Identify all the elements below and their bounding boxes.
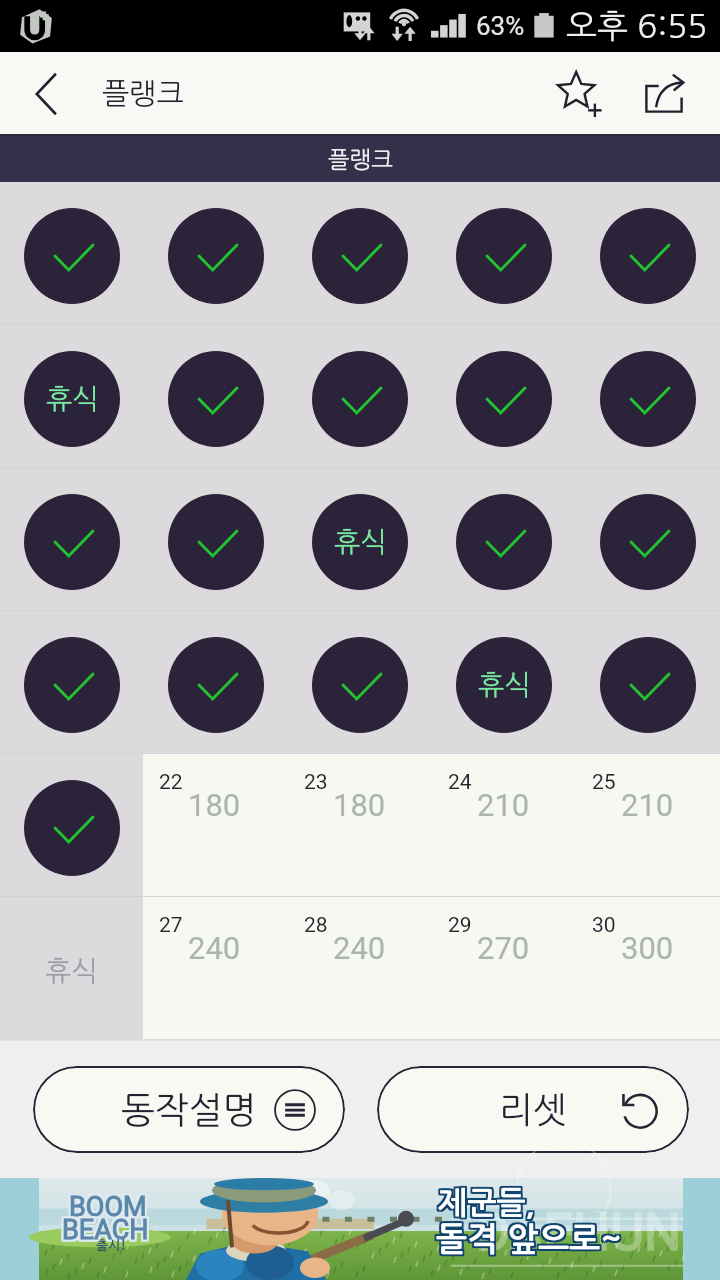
staticText: 제군들,: [440, 1188, 537, 1219]
button[interactable]: [0, 182, 144, 324]
staticText: 돌격 앞으로~: [436, 1221, 622, 1254]
staticText: BOOM: [69, 1193, 147, 1225]
staticText: 휴식: [478, 671, 531, 699]
staticText: BEACH: [60, 1212, 147, 1244]
button[interactable]: 24: [432, 754, 576, 896]
staticText: 플랭크: [328, 148, 393, 171]
button[interactable]: [144, 611, 288, 753]
staticText: BEACH: [60, 1216, 147, 1248]
staticText: 240: [333, 930, 386, 966]
staticText: BEACH: [62, 1216, 149, 1248]
button[interactable]: [0, 468, 144, 610]
button[interactable]: [0, 754, 143, 896]
staticText: 돌격 앞으로~: [434, 1221, 620, 1254]
staticText: 180: [188, 787, 241, 823]
staticText: 돌격 앞으로~: [438, 1225, 624, 1258]
staticText: 동작설명: [121, 1092, 257, 1128]
button[interactable]: 22: [143, 754, 288, 896]
staticText: 180: [333, 787, 386, 823]
staticText: 돌격 앞으로~: [436, 1223, 622, 1256]
staticText: BOOM: [71, 1193, 149, 1225]
staticText: 240: [188, 930, 241, 966]
staticText: 270: [477, 930, 530, 966]
staticText: 제군들,: [436, 1188, 533, 1219]
button[interactable]: [288, 182, 432, 324]
staticText: BOOM: [71, 1191, 149, 1223]
button[interactable]: 25: [576, 754, 720, 896]
button[interactable]: 29: [432, 897, 576, 1039]
staticText: 30: [592, 913, 616, 938]
staticText: BEACH: [62, 1212, 149, 1244]
button[interactable]: 28: [288, 897, 432, 1039]
staticText: BEACH: [64, 1214, 151, 1246]
button[interactable]: [144, 468, 288, 610]
staticText: 제군들,: [438, 1186, 535, 1217]
button[interactable]: 27: [143, 897, 288, 1039]
staticText: BEACH: [62, 1214, 149, 1246]
staticText: BOOM: [67, 1191, 145, 1223]
button[interactable]: 휴식: [0, 325, 144, 467]
staticText: 22: [159, 770, 183, 795]
staticText: BOOM: [67, 1193, 145, 1225]
button[interactable]: [432, 182, 576, 324]
staticText: 제군들,: [438, 1188, 535, 1219]
button[interactable]: [432, 325, 576, 467]
staticText: 27: [159, 913, 183, 938]
staticText: BEACH: [64, 1216, 151, 1248]
button[interactable]: [576, 611, 720, 753]
staticText: BOOM: [69, 1191, 147, 1223]
button[interactable]: [288, 325, 432, 467]
button[interactable]: 동작설명: [33, 1066, 345, 1153]
staticText: 휴식: [46, 385, 99, 413]
staticText: BEACH: [64, 1212, 151, 1244]
staticText: 돌격 앞으로~: [436, 1223, 622, 1256]
staticText: 24: [448, 770, 472, 795]
button[interactable]: Share: [622, 52, 706, 136]
button[interactable]: [0, 611, 144, 753]
staticText: 25: [592, 770, 616, 795]
staticText: 돌격 앞으로~: [434, 1225, 620, 1258]
button[interactable]: 23: [288, 754, 432, 896]
staticText: 300: [621, 930, 674, 966]
staticText: 돌격 앞으로~: [434, 1223, 620, 1256]
staticText: 돌격 앞으로~: [438, 1223, 624, 1256]
staticText: DAEHUN: [476, 1202, 681, 1263]
button[interactable]: 30: [576, 897, 720, 1039]
button[interactable]: [432, 468, 576, 610]
staticText: 제군들,: [440, 1186, 537, 1217]
staticText: 돌격 앞으로~: [438, 1221, 624, 1254]
staticText: BEACH: [62, 1214, 149, 1246]
staticText: BOOM: [67, 1189, 145, 1221]
button[interactable]: [576, 468, 720, 610]
button[interactable]: 리셋: [377, 1066, 689, 1153]
staticText: 리셋: [499, 1092, 567, 1128]
staticText: 출시!: [96, 1239, 126, 1252]
staticText: 210: [621, 787, 674, 823]
button[interactable]: [288, 611, 432, 753]
staticText: 23: [304, 770, 328, 795]
staticText: 63%: [476, 11, 525, 41]
staticText: BOOM: [69, 1189, 147, 1221]
staticText: 휴식: [45, 957, 98, 985]
button[interactable]: Add to favourites: [538, 52, 622, 136]
staticText: 제군들,: [438, 1190, 535, 1221]
staticText: 돌격 앞으로~: [436, 1225, 622, 1258]
button[interactable]: Back: [0, 52, 96, 136]
staticText: 오후 6:55: [566, 10, 708, 43]
button[interactable]: [144, 182, 288, 324]
button[interactable]: DAEHUN: [0, 1178, 720, 1280]
staticText: 제군들,: [436, 1190, 533, 1221]
button[interactable]: 휴식: [288, 468, 432, 610]
staticText: BOOM: [71, 1189, 149, 1221]
staticText: 휴식: [334, 528, 387, 556]
staticText: 210: [477, 787, 530, 823]
button[interactable]: [144, 325, 288, 467]
button[interactable]: 휴식: [432, 611, 576, 753]
staticText: 29: [448, 913, 472, 938]
button[interactable]: [576, 325, 720, 467]
staticText: 제군들,: [440, 1190, 537, 1221]
button[interactable]: [576, 182, 720, 324]
button[interactable]: 휴식: [0, 897, 143, 1039]
staticText: 제군들,: [438, 1188, 535, 1219]
staticText: 28: [304, 913, 328, 938]
